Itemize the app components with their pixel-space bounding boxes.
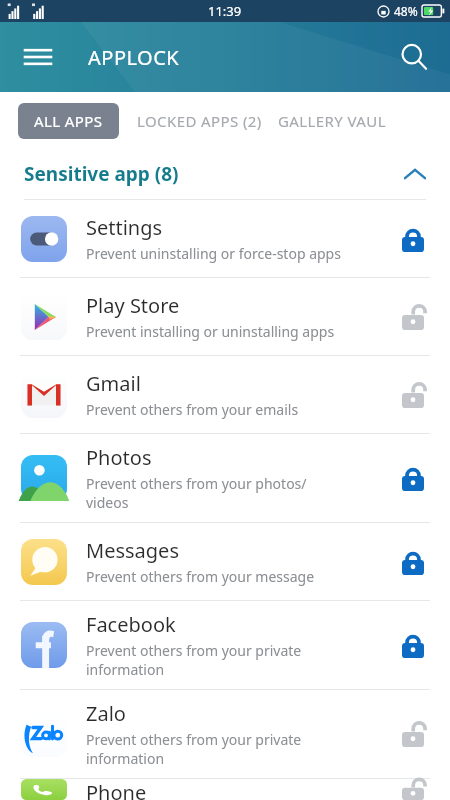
staticText: GALLERY VAUL bbox=[278, 111, 386, 131]
staticText: Prevent others from your private informa… bbox=[86, 730, 302, 768]
staticText: Prevent installing or uninstalling apps bbox=[86, 322, 335, 341]
staticText: LOCKED APPS (2) bbox=[137, 111, 262, 131]
button[interactable]: Facebook bbox=[0, 601, 450, 689]
staticText: Gmail bbox=[86, 370, 141, 397]
button[interactable]: ALL APPS bbox=[18, 103, 119, 139]
staticText: 11:39 bbox=[208, 2, 242, 20]
staticText: Prevent others from your photos/ videos bbox=[86, 474, 307, 512]
button[interactable]: Messages bbox=[0, 523, 450, 600]
button[interactable]: Gmail unlocked, tap to lock bbox=[396, 378, 430, 412]
other: Collapse section bbox=[402, 161, 428, 187]
button[interactable]: Zalo unlocked, tap to lock bbox=[396, 717, 430, 751]
staticText: Prevent others from your emails bbox=[86, 400, 299, 419]
staticText: Phone bbox=[86, 779, 147, 800]
staticText: Prevent uninstalling or force-stop apps bbox=[86, 244, 341, 263]
button[interactable]: Messages locked, tap to unlock bbox=[396, 545, 430, 579]
staticText: 48% bbox=[394, 3, 418, 19]
staticText: ALL APPS bbox=[34, 111, 103, 131]
staticText: Zalo bbox=[86, 700, 126, 727]
button[interactable]: Photos bbox=[0, 434, 450, 522]
staticText: Photos bbox=[86, 444, 152, 471]
button[interactable]: GALLERY VAUL bbox=[278, 103, 386, 139]
button[interactable]: Play Store unlocked, tap to lock bbox=[396, 300, 430, 334]
staticText: Play Store bbox=[86, 292, 180, 319]
staticText: Prevent others from your private informa… bbox=[86, 641, 302, 679]
button[interactable]: Phone bbox=[0, 779, 450, 800]
button[interactable]: Settings locked, tap to unlock bbox=[396, 222, 430, 256]
button[interactable]: Sensitive app (8) bbox=[0, 149, 450, 199]
staticText: Facebook bbox=[86, 611, 176, 638]
button[interactable]: Open navigation menu bbox=[14, 33, 62, 81]
button[interactable]: Photos locked, tap to unlock bbox=[396, 461, 430, 495]
button[interactable]: LOCKED APPS (2) bbox=[131, 103, 268, 139]
button[interactable]: Facebook locked, tap to unlock bbox=[396, 628, 430, 662]
staticText: Sensitive app (8) bbox=[24, 161, 179, 187]
button[interactable]: Search bbox=[390, 33, 438, 81]
button[interactable]: Settings bbox=[0, 200, 450, 277]
button[interactable]: Zalo bbox=[0, 690, 450, 778]
button[interactable]: Play Store bbox=[0, 278, 450, 355]
staticText: Prevent others from your message bbox=[86, 567, 315, 586]
button[interactable]: Gmail bbox=[0, 356, 450, 433]
staticText: Messages bbox=[86, 537, 179, 564]
staticText: APPLOCK bbox=[88, 44, 180, 71]
staticText: Settings bbox=[86, 214, 163, 241]
button[interactable]: Phone unlocked, tap to lock bbox=[396, 779, 430, 800]
